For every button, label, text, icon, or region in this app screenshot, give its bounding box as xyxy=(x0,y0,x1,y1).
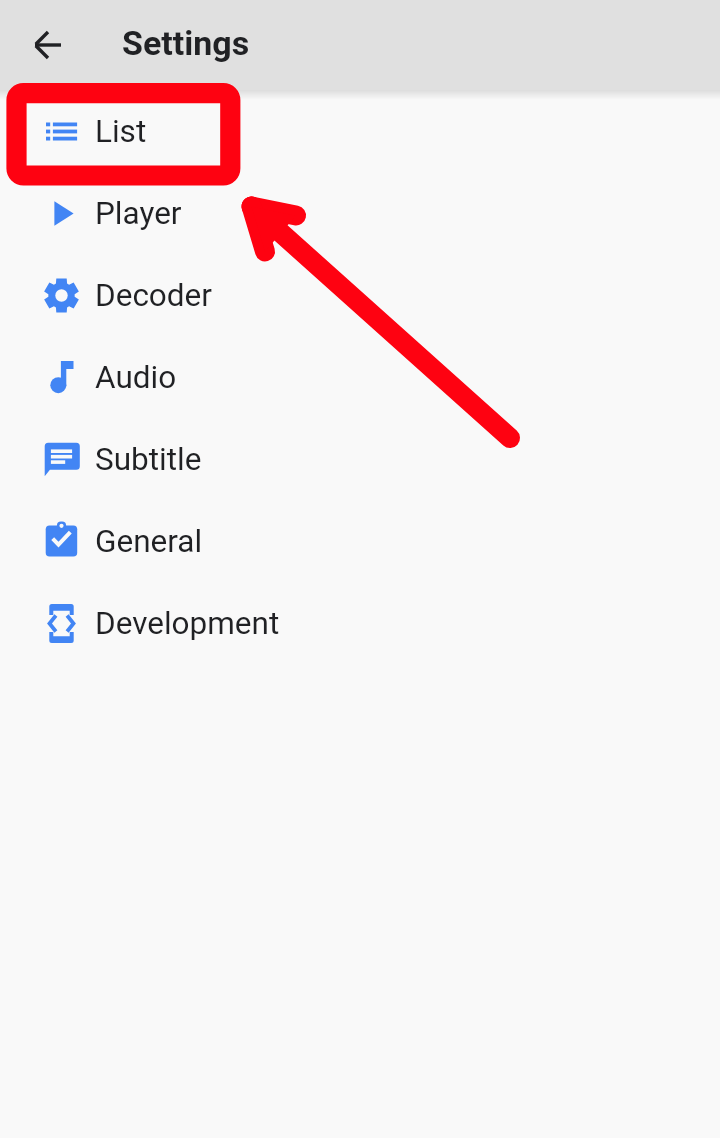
button[interactable]: Back xyxy=(22,16,80,74)
button[interactable]: General xyxy=(0,500,720,582)
staticText: List xyxy=(95,113,147,150)
staticText: Development xyxy=(95,605,280,642)
staticText: Decoder xyxy=(95,277,212,314)
staticText: Player xyxy=(95,195,182,232)
button[interactable]: Development xyxy=(0,582,720,664)
button[interactable]: Decoder xyxy=(0,254,720,336)
staticText: Settings xyxy=(122,23,250,63)
button[interactable]: Player xyxy=(0,172,720,254)
staticText: Subtitle xyxy=(95,441,202,478)
staticText: General xyxy=(95,523,203,560)
button[interactable]: Audio xyxy=(0,336,720,418)
button[interactable]: Subtitle xyxy=(0,418,720,500)
button[interactable]: List xyxy=(0,90,720,172)
staticText: Audio xyxy=(95,359,177,396)
